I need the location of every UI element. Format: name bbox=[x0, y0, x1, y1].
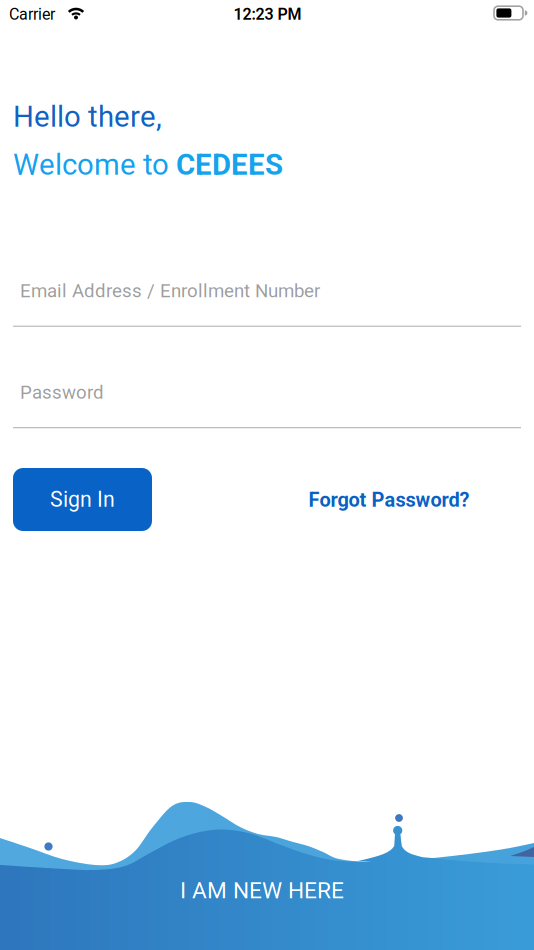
button[interactable]: Email Address / Enrollment Number bbox=[13, 280, 521, 327]
staticText: Welcome to bbox=[13, 148, 176, 181]
button[interactable]: Password bbox=[13, 382, 521, 428]
button[interactable]: I AM NEW HERE bbox=[180, 878, 344, 903]
staticText: CEDEES bbox=[176, 148, 283, 181]
staticText: Password bbox=[20, 382, 104, 403]
staticText: I AM NEW HERE bbox=[180, 878, 344, 903]
staticText: 12:23 PM bbox=[233, 5, 301, 23]
button[interactable]: Forgot Password? bbox=[308, 489, 469, 511]
staticText: Carrier bbox=[9, 5, 55, 23]
staticText: Sign In bbox=[50, 487, 115, 512]
staticText: Email Address / Enrollment Number bbox=[20, 280, 320, 301]
button[interactable]: Sign In bbox=[13, 468, 152, 531]
staticText: Forgot Password? bbox=[308, 489, 469, 511]
staticText: Hello there, bbox=[13, 100, 162, 133]
